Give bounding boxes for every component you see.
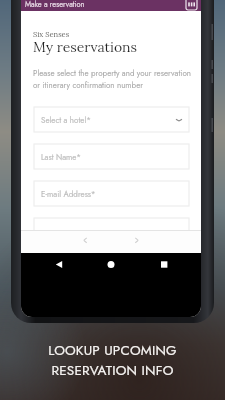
staticText: My reservations [33,38,138,56]
button[interactable]: Make a reservation [21,0,201,11]
staticText: Make a reservation [25,0,85,10]
button[interactable]: Last Name* [34,144,189,169]
staticText: Please select the property and your rese… [33,67,191,91]
button[interactable]: E-mail Address* [34,181,189,206]
staticText: Last Name* [41,151,81,163]
staticText: LOOKUP UPCOMING [48,341,177,361]
staticText: Select a hotel* [41,114,92,126]
button[interactable]: Calendar [186,0,197,10]
staticText: E-mail Address* [41,188,96,200]
staticText: Six Senses [33,29,70,39]
button[interactable]: Select a hotel* [34,107,189,132]
button[interactable] [34,218,189,243]
staticText: RESERVATION INFO [51,361,174,381]
